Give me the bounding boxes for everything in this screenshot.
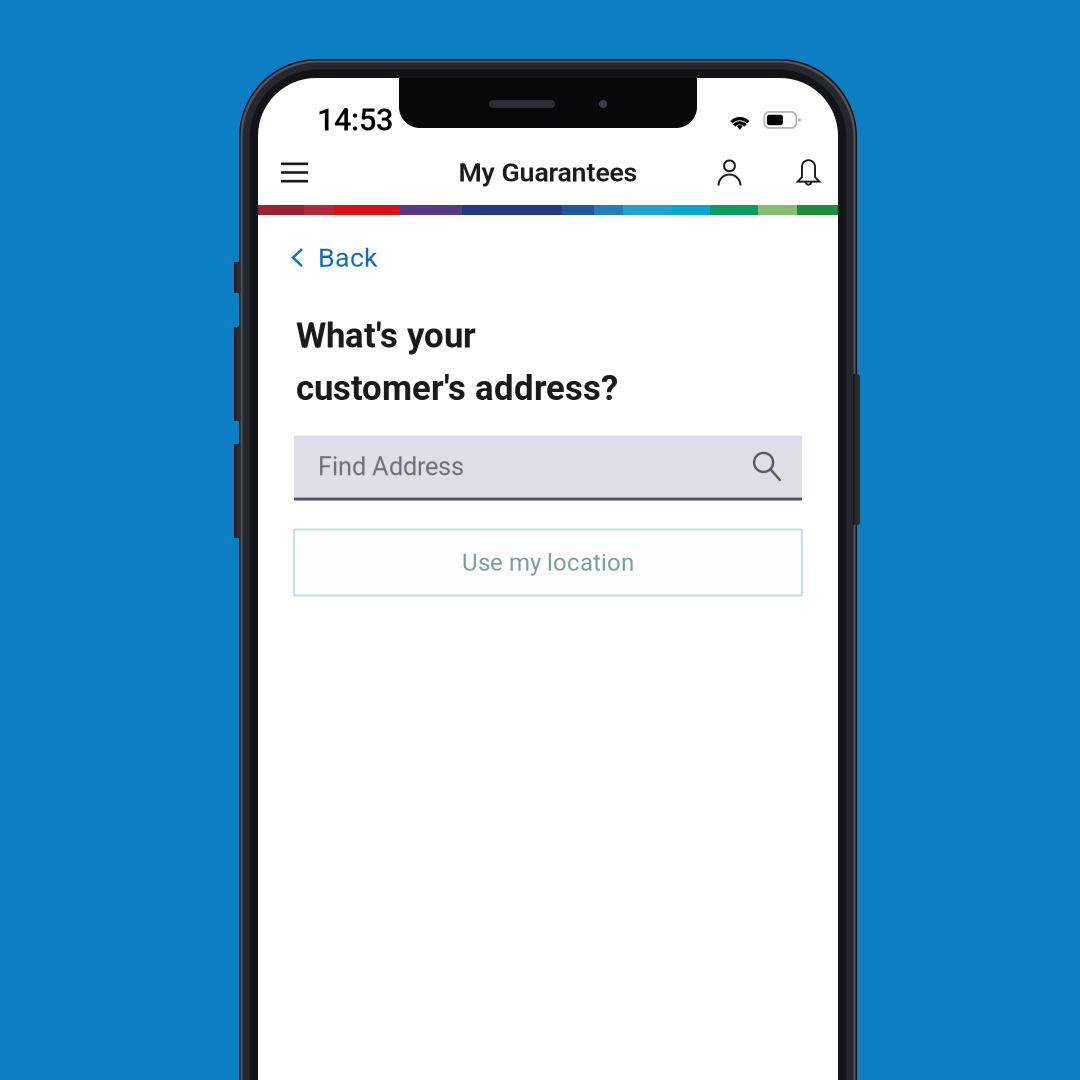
staticText: customer's address? <box>296 368 618 408</box>
staticText: 14:53 <box>317 102 393 138</box>
button[interactable]: Back <box>282 232 388 283</box>
button[interactable]: Use my location <box>294 529 802 595</box>
staticText: Back <box>318 242 378 273</box>
staticText: Use my location <box>462 548 634 576</box>
button[interactable]: Notifications <box>783 147 834 198</box>
button[interactable]: Account <box>704 147 755 198</box>
staticText: My Guarantees <box>458 157 637 188</box>
button[interactable]: Menu <box>269 150 320 194</box>
staticText: What's your <box>296 315 476 356</box>
staticText: Find Address <box>318 452 464 481</box>
button[interactable]: Find Address <box>294 435 802 500</box>
